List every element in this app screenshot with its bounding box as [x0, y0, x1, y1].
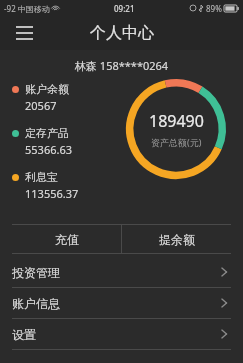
- staticText: 113556.37: [25, 186, 79, 201]
- staticText: 账户余额: [25, 82, 69, 96]
- staticText: -92 中国移动: [4, 3, 50, 14]
- staticText: 账户信息: [12, 296, 60, 311]
- button[interactable]: 设置: [0, 319, 243, 350]
- button[interactable]: Menu: [10, 19, 38, 47]
- button[interactable]: 投资管理: [0, 257, 243, 288]
- staticText: 89%: [206, 3, 222, 14]
- staticText: 林森 158****0264: [75, 58, 169, 73]
- button[interactable]: 账户信息: [0, 288, 243, 319]
- staticText: 资产总额(元): [151, 136, 202, 148]
- staticText: 利息宝: [25, 170, 58, 184]
- staticText: 55366.63: [25, 142, 72, 157]
- staticText: 提余额: [159, 232, 195, 247]
- staticText: 设置: [12, 327, 36, 342]
- staticText: 09:21: [114, 3, 135, 14]
- staticText: 投资管理: [12, 265, 60, 280]
- staticText: 20567: [25, 98, 57, 113]
- staticText: 189490: [149, 110, 204, 132]
- button[interactable]: 充值: [12, 225, 121, 253]
- button[interactable]: 提余额: [122, 225, 231, 253]
- staticText: 个人中心: [90, 23, 154, 43]
- staticText: 定存产品: [25, 126, 69, 140]
- staticText: 充值: [55, 232, 79, 247]
